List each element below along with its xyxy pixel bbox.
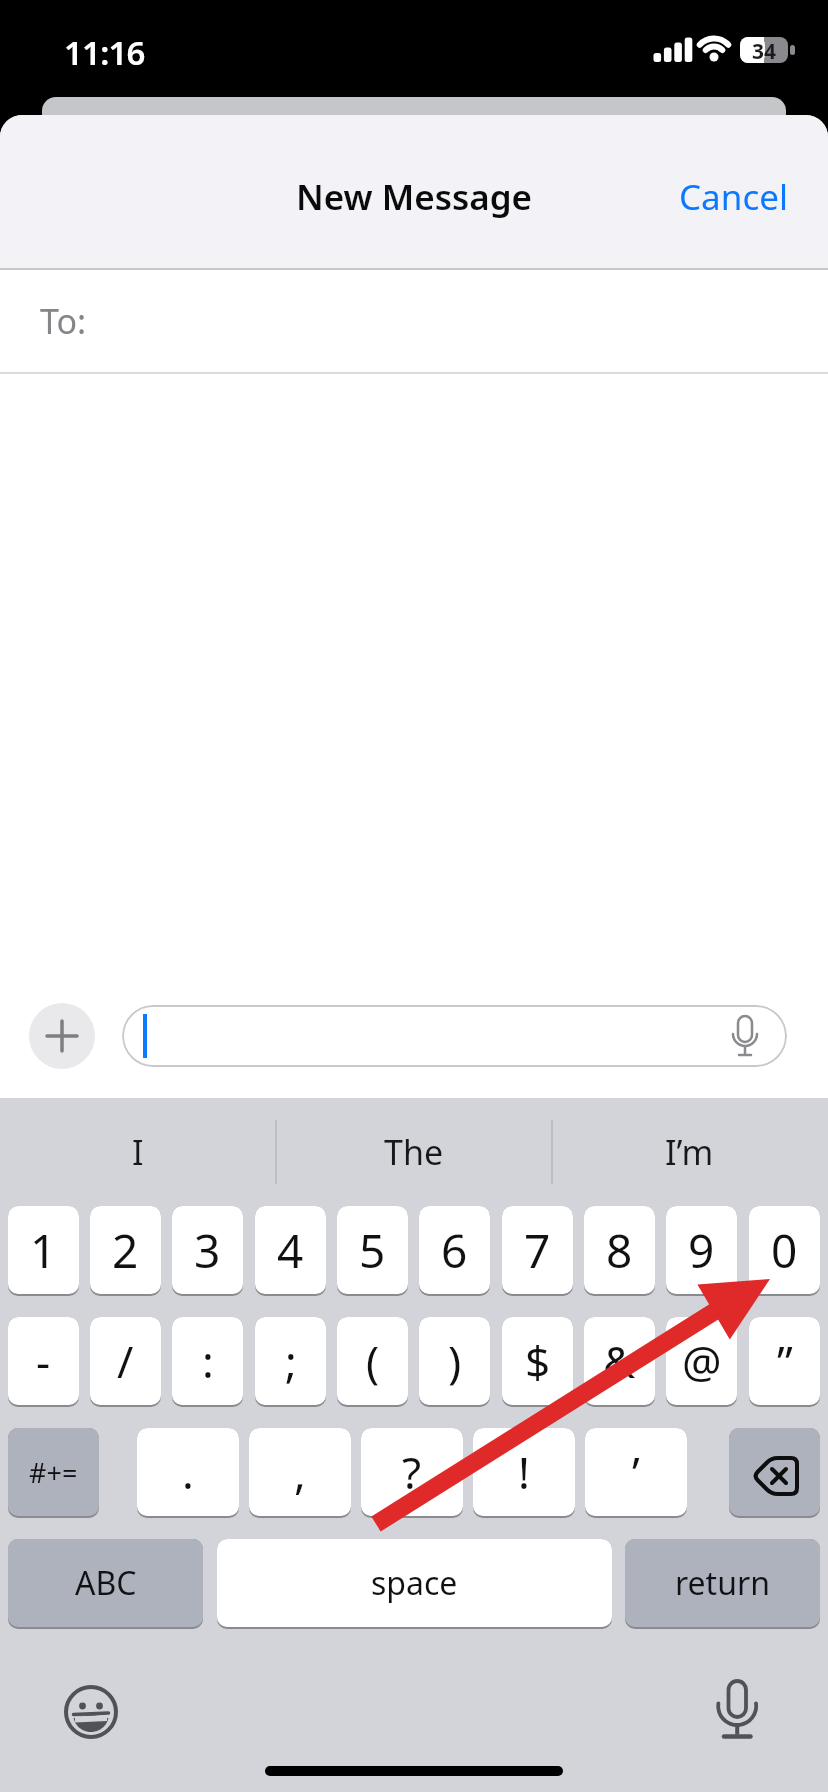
staticText: ! bbox=[518, 1442, 530, 1502]
button[interactable]: space bbox=[217, 1539, 612, 1627]
button[interactable]: 5 bbox=[337, 1206, 408, 1294]
staticText: The bbox=[384, 1129, 444, 1175]
staticText: ? bbox=[402, 1442, 422, 1502]
button[interactable]: : bbox=[172, 1317, 243, 1405]
staticText: I bbox=[132, 1129, 144, 1175]
button[interactable]: 4 bbox=[255, 1206, 326, 1294]
button[interactable]: ” bbox=[749, 1317, 820, 1405]
staticText: 4 bbox=[277, 1219, 304, 1282]
button[interactable]: & bbox=[584, 1317, 655, 1405]
button[interactable]: #+= bbox=[8, 1428, 99, 1516]
button[interactable]: return bbox=[625, 1539, 820, 1627]
button[interactable]: ? bbox=[361, 1428, 463, 1516]
staticText: , bbox=[294, 1442, 306, 1502]
staticText: 3 bbox=[194, 1219, 221, 1282]
staticText: Cancel bbox=[679, 173, 788, 221]
staticText: @ bbox=[682, 1331, 722, 1391]
button[interactable]: 1 bbox=[8, 1206, 79, 1294]
staticText: New Message bbox=[296, 173, 533, 221]
button[interactable]: ; bbox=[255, 1317, 326, 1405]
staticText: . bbox=[182, 1442, 194, 1502]
staticText: I’m bbox=[665, 1129, 714, 1175]
button[interactable]: ! bbox=[473, 1428, 575, 1516]
staticText: 11:16 bbox=[64, 30, 145, 75]
button[interactable] bbox=[122, 1005, 787, 1067]
staticText: ABC bbox=[75, 1561, 137, 1605]
staticText: 34 bbox=[752, 37, 777, 63]
staticText: To: bbox=[40, 298, 87, 344]
button[interactable]: 8 bbox=[584, 1206, 655, 1294]
button[interactable]: - bbox=[8, 1317, 79, 1405]
staticText: ” bbox=[777, 1331, 793, 1391]
button[interactable]: 0 bbox=[749, 1206, 820, 1294]
button[interactable]: 6 bbox=[419, 1206, 490, 1294]
staticText: ( bbox=[366, 1331, 380, 1391]
staticText: 8 bbox=[606, 1219, 633, 1282]
button[interactable]: Cancel bbox=[659, 173, 828, 221]
button[interactable]: ABC bbox=[8, 1539, 203, 1627]
staticText: space bbox=[371, 1561, 458, 1605]
button[interactable]: I’m bbox=[551, 1114, 828, 1190]
button[interactable]: To: bbox=[0, 270, 828, 372]
staticText: return bbox=[675, 1561, 770, 1605]
button[interactable]: ( bbox=[337, 1317, 408, 1405]
button[interactable]: 9 bbox=[666, 1206, 737, 1294]
staticText: #+= bbox=[29, 1454, 78, 1491]
staticText: : bbox=[202, 1331, 214, 1391]
staticText: - bbox=[36, 1331, 51, 1391]
staticText: ’ bbox=[632, 1442, 640, 1502]
button[interactable] bbox=[729, 1428, 820, 1516]
button[interactable]: I bbox=[0, 1114, 276, 1190]
staticText: 9 bbox=[688, 1219, 715, 1282]
button[interactable]: 2 bbox=[90, 1206, 161, 1294]
staticText: & bbox=[603, 1331, 636, 1391]
staticText: 2 bbox=[112, 1219, 139, 1282]
button[interactable]: , bbox=[249, 1428, 351, 1516]
button[interactable]: ’ bbox=[585, 1428, 687, 1516]
staticText: ) bbox=[448, 1331, 462, 1391]
button[interactable]: $ bbox=[502, 1317, 573, 1405]
button[interactable] bbox=[29, 1003, 95, 1069]
staticText: 1 bbox=[30, 1219, 57, 1282]
button[interactable]: . bbox=[137, 1428, 239, 1516]
staticText: 6 bbox=[441, 1219, 468, 1282]
button[interactable]: 3 bbox=[172, 1206, 243, 1294]
button[interactable]: ) bbox=[419, 1317, 490, 1405]
staticText: 0 bbox=[771, 1219, 798, 1282]
staticText: ; bbox=[285, 1331, 297, 1391]
staticText: 7 bbox=[524, 1219, 551, 1282]
staticText: $ bbox=[525, 1331, 551, 1391]
button[interactable]: @ bbox=[666, 1317, 737, 1405]
button[interactable] bbox=[705, 1680, 769, 1744]
staticText: 5 bbox=[359, 1219, 386, 1282]
button[interactable]: 7 bbox=[502, 1206, 573, 1294]
button[interactable] bbox=[58, 1680, 122, 1744]
button[interactable]: The bbox=[276, 1114, 551, 1190]
staticText: / bbox=[117, 1331, 134, 1391]
button[interactable]: / bbox=[90, 1317, 161, 1405]
